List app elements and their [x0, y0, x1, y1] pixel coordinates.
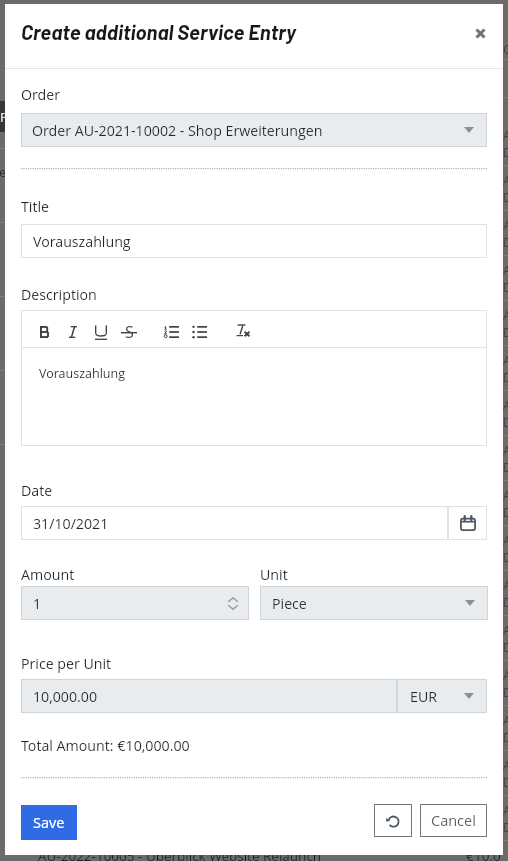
staticText: Total Amount: €10,000.00: [21, 736, 190, 755]
staticText: A: [503, 712, 508, 728]
staticText: EUR: [410, 687, 437, 706]
staticText: Piece: [272, 594, 307, 613]
staticText: D: [503, 234, 508, 250]
staticText: Save: [33, 813, 65, 833]
staticText: A: [503, 262, 508, 278]
staticText: D: [503, 144, 508, 160]
staticText: A: [503, 667, 508, 683]
button[interactable]: Clear formatting: [229, 317, 258, 346]
staticText: D: [503, 819, 508, 835]
staticText: D: [503, 414, 508, 430]
staticText: Create additional Service Entry: [21, 20, 296, 44]
button[interactable]: 10,000.00: [21, 679, 397, 713]
staticText: O: [503, 40, 508, 58]
staticText: A: [503, 802, 508, 818]
button[interactable]: Pick date: [448, 506, 487, 540]
staticText: D: [503, 729, 508, 745]
staticText: A: [503, 307, 508, 323]
staticText: D: [503, 549, 508, 565]
staticText: A: [503, 532, 508, 548]
staticText: A: [503, 127, 508, 143]
button[interactable]: Bulleted list: [185, 318, 214, 345]
staticText: A: [503, 397, 508, 413]
staticText: D: [503, 459, 508, 475]
button[interactable]: Reset: [374, 804, 412, 837]
staticText: D: [503, 774, 508, 790]
staticText: A: [503, 757, 508, 773]
staticText: 31/10/2021: [33, 514, 109, 533]
button[interactable]: Italic: [62, 318, 84, 345]
button[interactable]: Bold: [33, 318, 57, 345]
staticText: e: [0, 163, 7, 181]
button[interactable]: Underline: [88, 318, 114, 347]
button[interactable]: Numbered list: [157, 318, 186, 345]
staticText: 10,000.00: [33, 687, 98, 706]
staticText: Cancel: [431, 811, 476, 831]
staticText: Description: [21, 285, 97, 304]
staticText: A: [503, 442, 508, 458]
button[interactable]: EUR: [397, 679, 487, 713]
staticText: Vorauszahlung: [33, 232, 131, 251]
staticText: AU-2022-10005 - Überblick Website Relaun…: [38, 847, 322, 861]
staticText: P: [0, 108, 8, 126]
staticText: Order AU-2021-10002 - Shop Erweiterungen: [32, 121, 323, 140]
button[interactable]: Cancel: [420, 804, 487, 837]
staticText: D: [503, 279, 508, 295]
button[interactable]: 1: [21, 586, 249, 620]
staticText: S: [125, 321, 134, 343]
staticText: €10.0: [466, 847, 501, 861]
staticText: D: [503, 189, 508, 205]
staticText: Date: [21, 481, 53, 500]
button[interactable]: Vorauszahlung: [21, 224, 487, 258]
staticText: D: [503, 369, 508, 385]
staticText: Title: [21, 197, 49, 216]
staticText: D: [503, 324, 508, 340]
staticText: Price per Unit: [21, 654, 112, 673]
button[interactable]: Piece: [260, 586, 488, 620]
staticText: Amount: [21, 565, 75, 584]
button[interactable]: Close: [463, 16, 497, 50]
staticText: A: [503, 352, 508, 368]
staticText: Unit: [260, 565, 288, 584]
staticText: A: [503, 172, 508, 188]
button[interactable]: Order AU-2021-10002 - Shop Erweiterungen: [21, 113, 487, 147]
staticText: D: [503, 684, 508, 700]
staticText: A: [503, 622, 508, 638]
button[interactable]: Strikethrough: [114, 318, 143, 345]
button[interactable]: 31/10/2021: [21, 506, 448, 540]
staticText: 1: [33, 594, 42, 613]
staticText: D: [503, 594, 508, 610]
staticText: D: [503, 639, 508, 655]
staticText: Vorauszahlung: [39, 365, 126, 382]
staticText: D: [503, 504, 508, 520]
staticText: Order: [21, 85, 61, 104]
staticText: A: [503, 217, 508, 233]
button[interactable]: Save: [21, 805, 77, 840]
staticText: A: [503, 487, 508, 503]
staticText: A: [503, 577, 508, 593]
